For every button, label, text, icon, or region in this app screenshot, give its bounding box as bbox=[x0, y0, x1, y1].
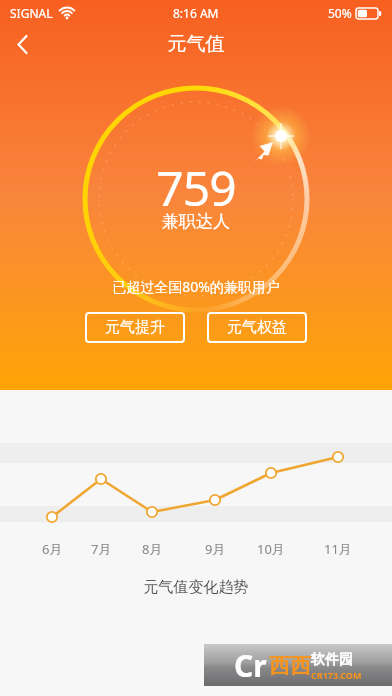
button[interactable]: 元气提升 bbox=[85, 312, 185, 343]
staticText: 759 bbox=[0, 155, 392, 220]
staticText: CR173.COM bbox=[311, 669, 362, 681]
staticText: 西西 bbox=[269, 653, 311, 679]
staticText: 元气值 bbox=[0, 32, 392, 56]
staticText: 软件园 bbox=[311, 651, 353, 669]
staticText: 元气提升 bbox=[105, 318, 165, 337]
button[interactable]: 元气权益 bbox=[207, 312, 307, 343]
staticText: 元气值变化趋势 bbox=[0, 578, 392, 597]
staticText: 已超过全国80%的兼职用户 bbox=[0, 277, 392, 296]
staticText: 11月 bbox=[324, 540, 352, 558]
staticText: SIGNAL bbox=[10, 5, 53, 21]
staticText: Cr bbox=[234, 645, 267, 686]
staticText: 10月 bbox=[257, 540, 285, 558]
button[interactable] bbox=[8, 30, 40, 62]
staticText: 6月 bbox=[42, 540, 63, 558]
staticText: 9月 bbox=[205, 540, 226, 558]
staticText: 8:16 AM bbox=[173, 5, 219, 21]
staticText: 50% bbox=[328, 5, 352, 21]
staticText: 元气权益 bbox=[227, 318, 287, 337]
staticText: 7月 bbox=[91, 540, 112, 558]
staticText: 8月 bbox=[142, 540, 163, 558]
staticText: 兼职达人 bbox=[0, 211, 392, 232]
